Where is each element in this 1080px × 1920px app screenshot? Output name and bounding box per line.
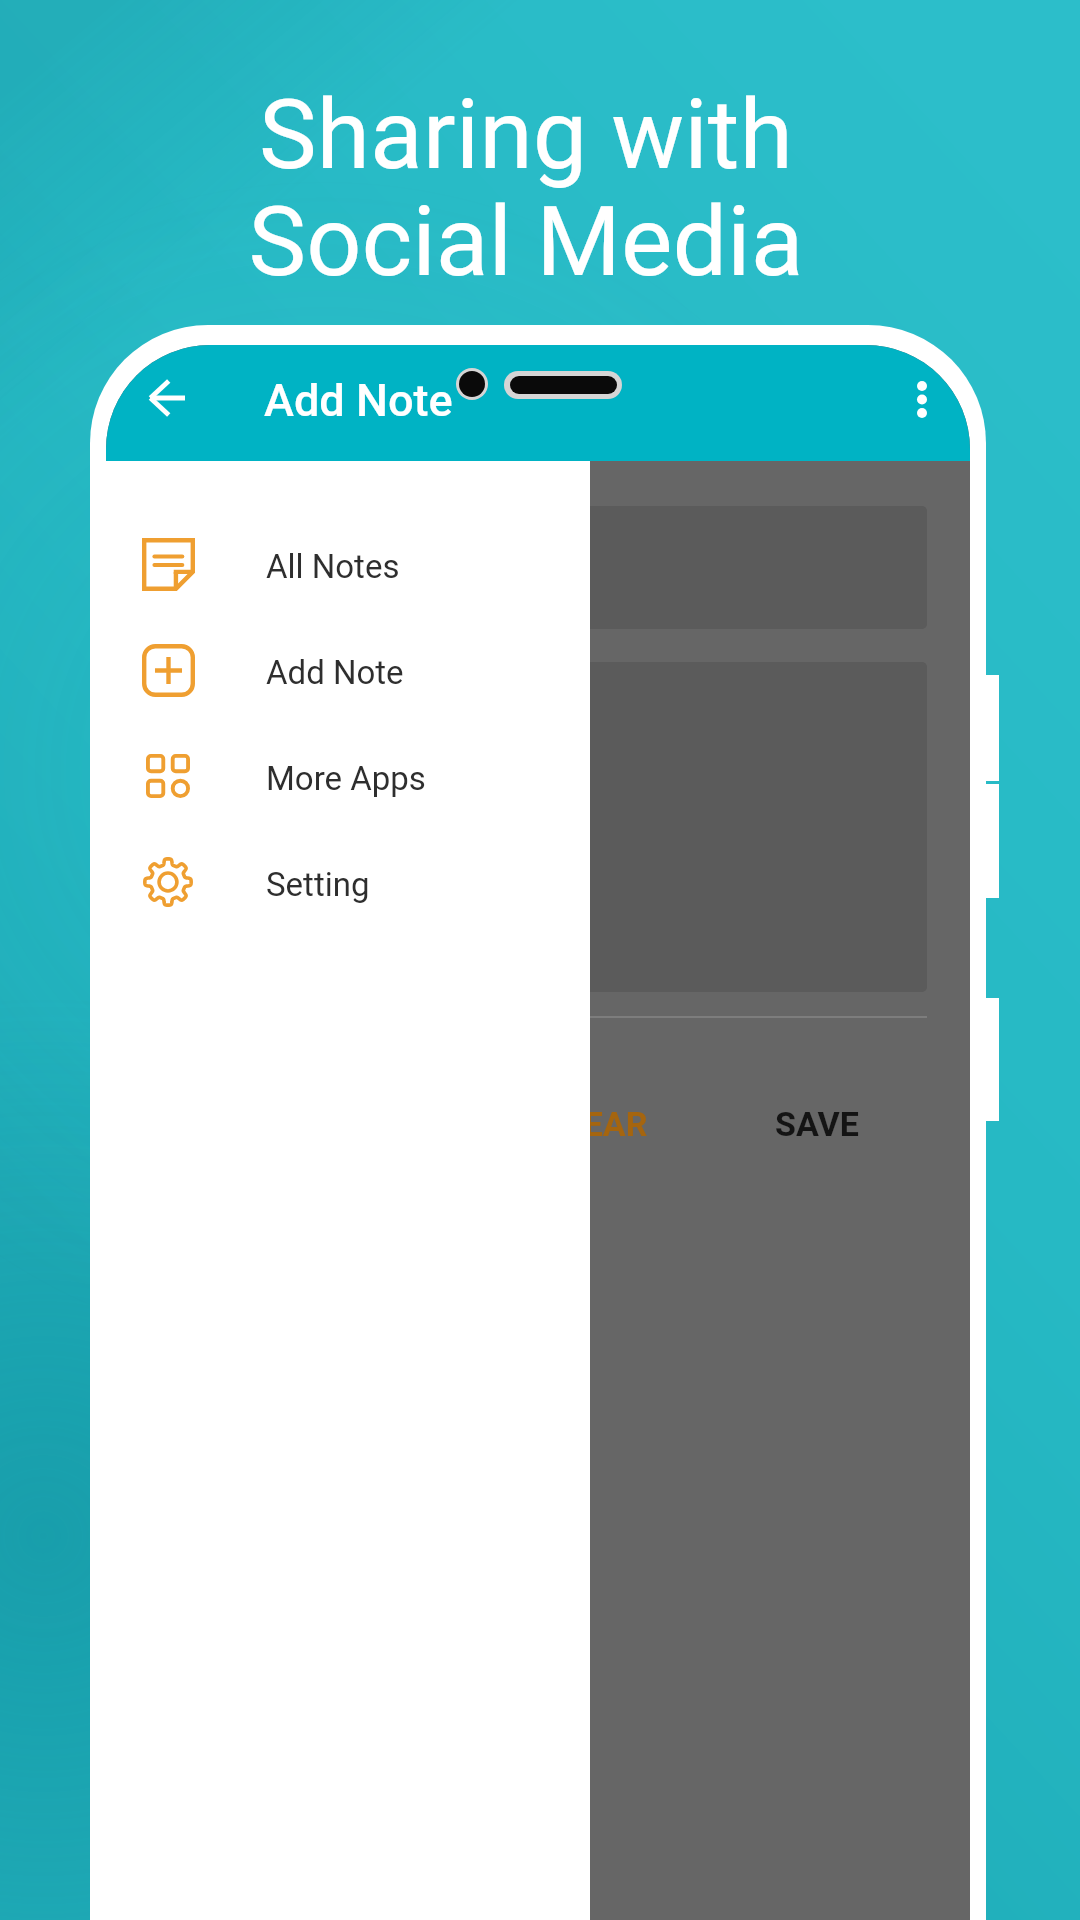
button[interactable]: Note title <box>149 506 927 629</box>
staticText: SAVE <box>775 1104 859 1144</box>
staticText: More Apps <box>266 759 426 798</box>
staticText: Add Note <box>266 653 404 692</box>
button[interactable]: SAVE <box>742 1071 892 1176</box>
staticText: CLEAR <box>543 1104 648 1144</box>
staticText: All Notes <box>266 547 400 586</box>
staticText: Add Note <box>264 374 453 427</box>
button[interactable]: CLEAR <box>510 1071 681 1176</box>
staticText: Setting <box>266 865 370 904</box>
button[interactable]: More Apps <box>106 723 590 829</box>
staticText: Sharing with <box>0 78 1066 192</box>
button[interactable]: Setting <box>106 829 590 935</box>
button[interactable]: Back <box>121 345 211 461</box>
staticText: Social Media <box>0 185 1066 299</box>
button[interactable]: Note body <box>149 662 927 992</box>
button[interactable]: More options <box>874 345 970 461</box>
button[interactable]: Add Note <box>106 617 590 723</box>
button[interactable]: All Notes <box>106 511 590 617</box>
